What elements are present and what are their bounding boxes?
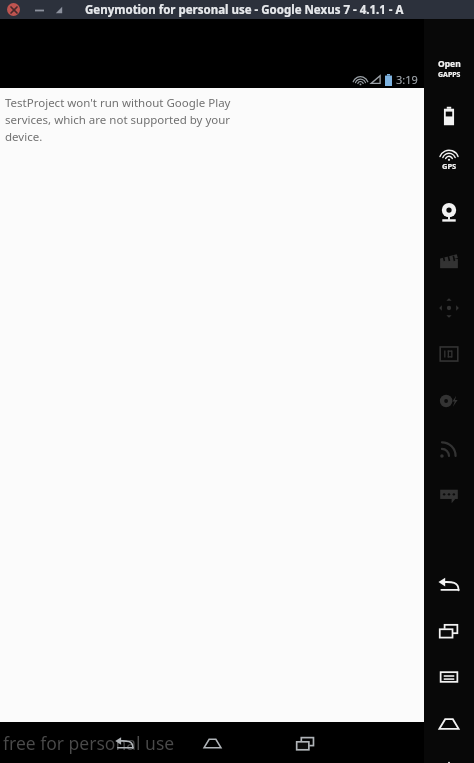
staticText: GAPPS — [438, 70, 461, 80]
button[interactable]: GPS — [427, 139, 471, 183]
button[interactable]: Sensors — [427, 286, 471, 330]
button[interactable]: Disk IO — [427, 379, 471, 423]
button[interactable]: Minimize — [32, 3, 46, 17]
button[interactable]: Battery — [427, 94, 471, 138]
button[interactable]: Recents — [427, 609, 471, 653]
staticText: Open — [438, 58, 461, 70]
button[interactable]: Back — [104, 723, 144, 763]
button[interactable]: Camera — [427, 191, 471, 235]
button[interactable]: Menu — [427, 655, 471, 699]
staticText: Genymotion for personal use - Google Nex… — [85, 2, 404, 18]
button[interactable]: Back — [427, 563, 471, 607]
button[interactable]: Restore — [52, 3, 66, 17]
button[interactable]: Home — [192, 723, 232, 763]
staticText: 3:19 — [396, 72, 418, 87]
button[interactable]: Open GAPPS — [427, 47, 471, 91]
button[interactable]: Identifiers — [427, 332, 471, 376]
button[interactable]: Network — [427, 426, 471, 470]
staticText: GPS — [442, 161, 457, 171]
button[interactable]: Video — [427, 239, 471, 283]
button[interactable]: Power — [427, 749, 471, 763]
staticText: TestProject won't run without Google Pla… — [5, 95, 244, 144]
button[interactable]: Home — [427, 702, 471, 746]
button[interactable]: SMS — [427, 473, 471, 517]
staticText: free for personal use — [3, 731, 175, 755]
button[interactable]: Close — [7, 3, 20, 16]
button[interactable]: Recents — [285, 723, 325, 763]
